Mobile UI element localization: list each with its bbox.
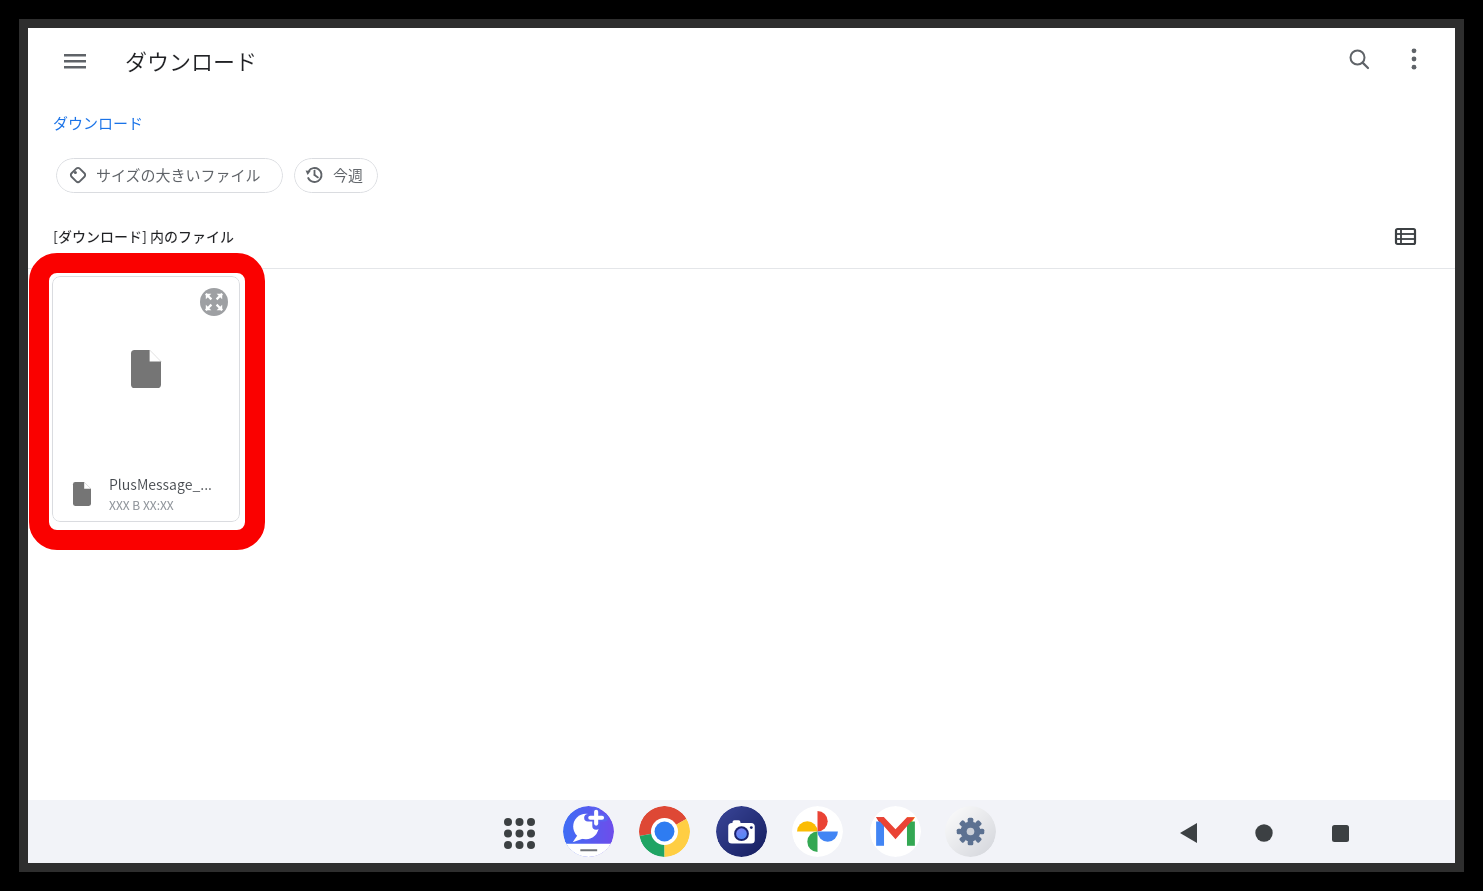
staticText: サイズの大きいファイル: [96, 164, 261, 186]
button[interactable]: [870, 806, 921, 857]
button[interactable]: [639, 806, 690, 857]
button[interactable]: [792, 806, 843, 857]
button[interactable]: サイズの大きいファイル: [56, 158, 283, 193]
staticText: XXX B XX:XX: [109, 496, 174, 513]
button[interactable]: [502, 816, 536, 850]
button[interactable]: [1386, 217, 1424, 255]
button[interactable]: [716, 806, 767, 857]
button[interactable]: 今週: [294, 158, 378, 193]
staticText: PlusMessage_...: [109, 474, 212, 494]
button[interactable]: [1396, 41, 1432, 77]
staticText: ダウンロード: [53, 112, 144, 134]
staticText: 今週: [333, 164, 364, 186]
button[interactable]: [1341, 41, 1377, 77]
button[interactable]: [563, 806, 614, 857]
button[interactable]: ダウンロード: [53, 112, 144, 134]
button[interactable]: [945, 806, 996, 857]
button[interactable]: [1247, 816, 1281, 850]
staticText: [ダウンロード] 内のファイル: [53, 226, 235, 246]
button[interactable]: [1171, 816, 1205, 850]
staticText: ダウンロード: [125, 44, 258, 76]
button[interactable]: [1323, 816, 1357, 850]
button[interactable]: [58, 44, 92, 78]
button[interactable]: PlusMessage_...: [52, 276, 240, 522]
